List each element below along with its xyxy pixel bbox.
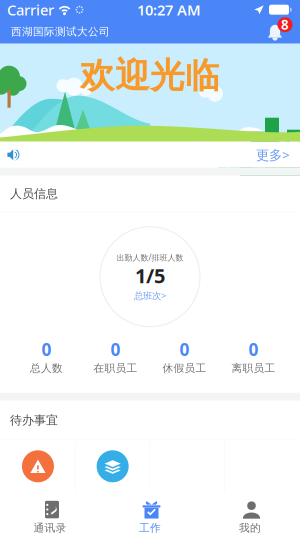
staticText: 总人数	[30, 362, 63, 375]
staticText: 出勤人数/排班人数	[116, 252, 183, 263]
button[interactable]: 工作	[100, 492, 200, 533]
staticText: 人员信息	[10, 186, 58, 201]
button[interactable]: 总班次>	[134, 289, 166, 302]
button[interactable]: 我的	[200, 492, 300, 533]
staticText: 0	[179, 338, 189, 361]
button[interactable]: 更多>	[0, 142, 300, 168]
staticText: 休假员工	[162, 362, 206, 375]
staticText: 通讯录	[33, 521, 66, 533]
staticText: 更多>	[256, 146, 290, 163]
staticText: 离职员工	[231, 362, 275, 375]
staticText: 8	[281, 16, 289, 33]
staticText: 工作	[139, 521, 161, 533]
staticText: 在职员工	[93, 362, 137, 375]
staticText: 10:27 AM	[137, 0, 201, 19]
staticText: 1/5	[135, 262, 165, 289]
button[interactable]: Notifications	[259, 20, 295, 44]
button[interactable]: 0	[219, 338, 288, 375]
button[interactable]: Alerts	[1, 440, 75, 492]
button[interactable]: 0	[12, 338, 81, 375]
button[interactable]: Documents	[76, 440, 150, 492]
staticText: 0	[248, 338, 258, 361]
staticText: 0	[110, 338, 120, 361]
button[interactable]: 0	[81, 338, 150, 375]
staticText: 待办事宜	[10, 413, 58, 427]
staticText: 0	[41, 338, 51, 361]
staticText: 总班次>	[134, 289, 166, 302]
button[interactable]: 0	[150, 338, 219, 375]
staticText: 西湖国际测试大公司	[11, 25, 110, 38]
staticText: 我的	[239, 521, 261, 533]
staticText: 欢迎光临	[80, 54, 220, 97]
button[interactable]: 通讯录	[0, 492, 100, 533]
staticText: Carrier	[7, 0, 54, 19]
